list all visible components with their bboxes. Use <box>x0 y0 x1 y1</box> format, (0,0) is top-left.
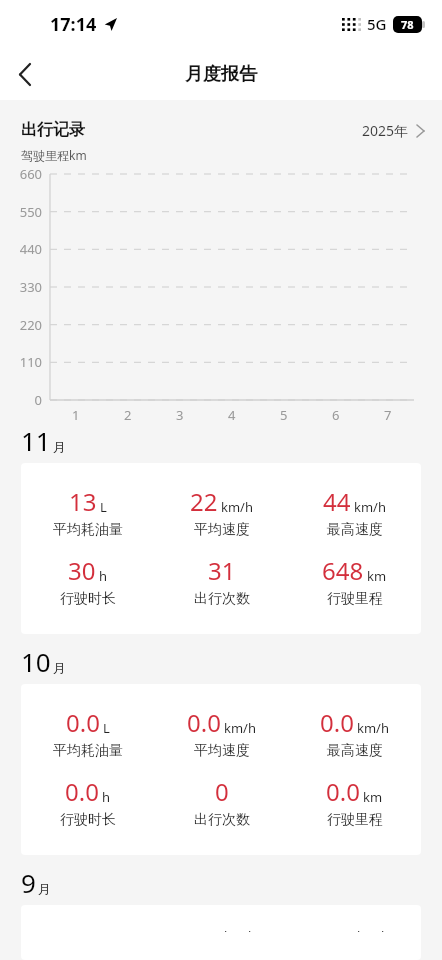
button[interactable]: 0.0 <box>21 684 421 855</box>
staticText: 平均耗油量 <box>53 742 123 760</box>
staticText: 9 <box>21 865 36 900</box>
staticText: 22 <box>190 485 218 518</box>
staticText: h <box>99 567 108 585</box>
staticText: km <box>363 788 383 806</box>
staticText: 6 <box>332 406 340 424</box>
staticText: 0.0 <box>65 775 99 808</box>
staticText: 行驶时长 <box>60 590 116 608</box>
staticText: 30 <box>68 554 96 587</box>
staticText: 出行次数 <box>194 590 250 608</box>
staticText: 3 <box>176 406 184 424</box>
staticText: 1 <box>72 406 80 424</box>
staticText: 11 <box>21 423 51 458</box>
staticText: km/h <box>224 719 256 737</box>
staticText: km <box>367 567 387 585</box>
staticText: 月度报告 <box>185 63 257 86</box>
staticText: 220 <box>0 316 42 334</box>
staticText: 0 <box>215 775 229 808</box>
staticText: 出行次数 <box>194 811 250 829</box>
staticText: 0.0 <box>320 706 354 739</box>
staticText: 驾驶里程km <box>21 147 87 163</box>
staticText: 648 <box>322 554 364 587</box>
staticText: L <box>103 719 110 737</box>
staticText: 行驶里程 <box>327 811 383 829</box>
staticText: 平均耗油量 <box>53 521 123 539</box>
staticText: 7 <box>384 406 392 424</box>
staticText: 0.0 <box>326 775 360 808</box>
staticText: 5G <box>367 14 387 34</box>
staticText: 10 <box>21 644 51 679</box>
staticText: 31 <box>208 554 236 587</box>
staticText: km/h <box>221 498 253 516</box>
button[interactable]: Back <box>0 50 48 98</box>
staticText: 平均速度 <box>194 742 250 760</box>
staticText: 440 <box>0 240 42 258</box>
staticText: 44 <box>323 485 351 518</box>
staticText: 月 <box>53 439 66 455</box>
staticText: 平均速度 <box>194 521 250 539</box>
staticText: km/h <box>354 498 386 516</box>
button[interactable]: 13 <box>21 463 421 634</box>
staticText: 0.0 <box>187 706 221 739</box>
staticText: 最高速度 <box>327 742 383 760</box>
staticText: 出行记录 <box>21 120 85 140</box>
staticText: 13 <box>69 485 97 518</box>
staticText: km/h <box>224 927 256 932</box>
staticText: 月 <box>38 881 51 897</box>
staticText: L <box>100 498 107 516</box>
staticText: 550 <box>0 203 42 221</box>
staticText: 660 <box>0 165 42 183</box>
staticText: km/h <box>357 719 389 737</box>
staticText: 行驶时长 <box>60 811 116 829</box>
staticText: 330 <box>0 278 42 296</box>
staticText: 17:14 <box>50 12 97 37</box>
staticText: 0 <box>0 391 42 409</box>
staticText: 最高速度 <box>327 521 383 539</box>
button[interactable]: 2025年 <box>362 121 424 140</box>
staticText: 行驶里程 <box>327 590 383 608</box>
staticText: 78 <box>401 17 414 32</box>
staticText: km/h <box>357 927 389 932</box>
staticText: 2 <box>124 406 132 424</box>
staticText: 4 <box>228 406 236 424</box>
staticText: 110 <box>0 353 42 371</box>
staticText: 月 <box>53 660 66 676</box>
staticText: 0.0 <box>66 706 100 739</box>
staticText: 5 <box>280 406 288 424</box>
staticText: h <box>102 788 111 806</box>
staticText: 2025年 <box>362 121 409 140</box>
